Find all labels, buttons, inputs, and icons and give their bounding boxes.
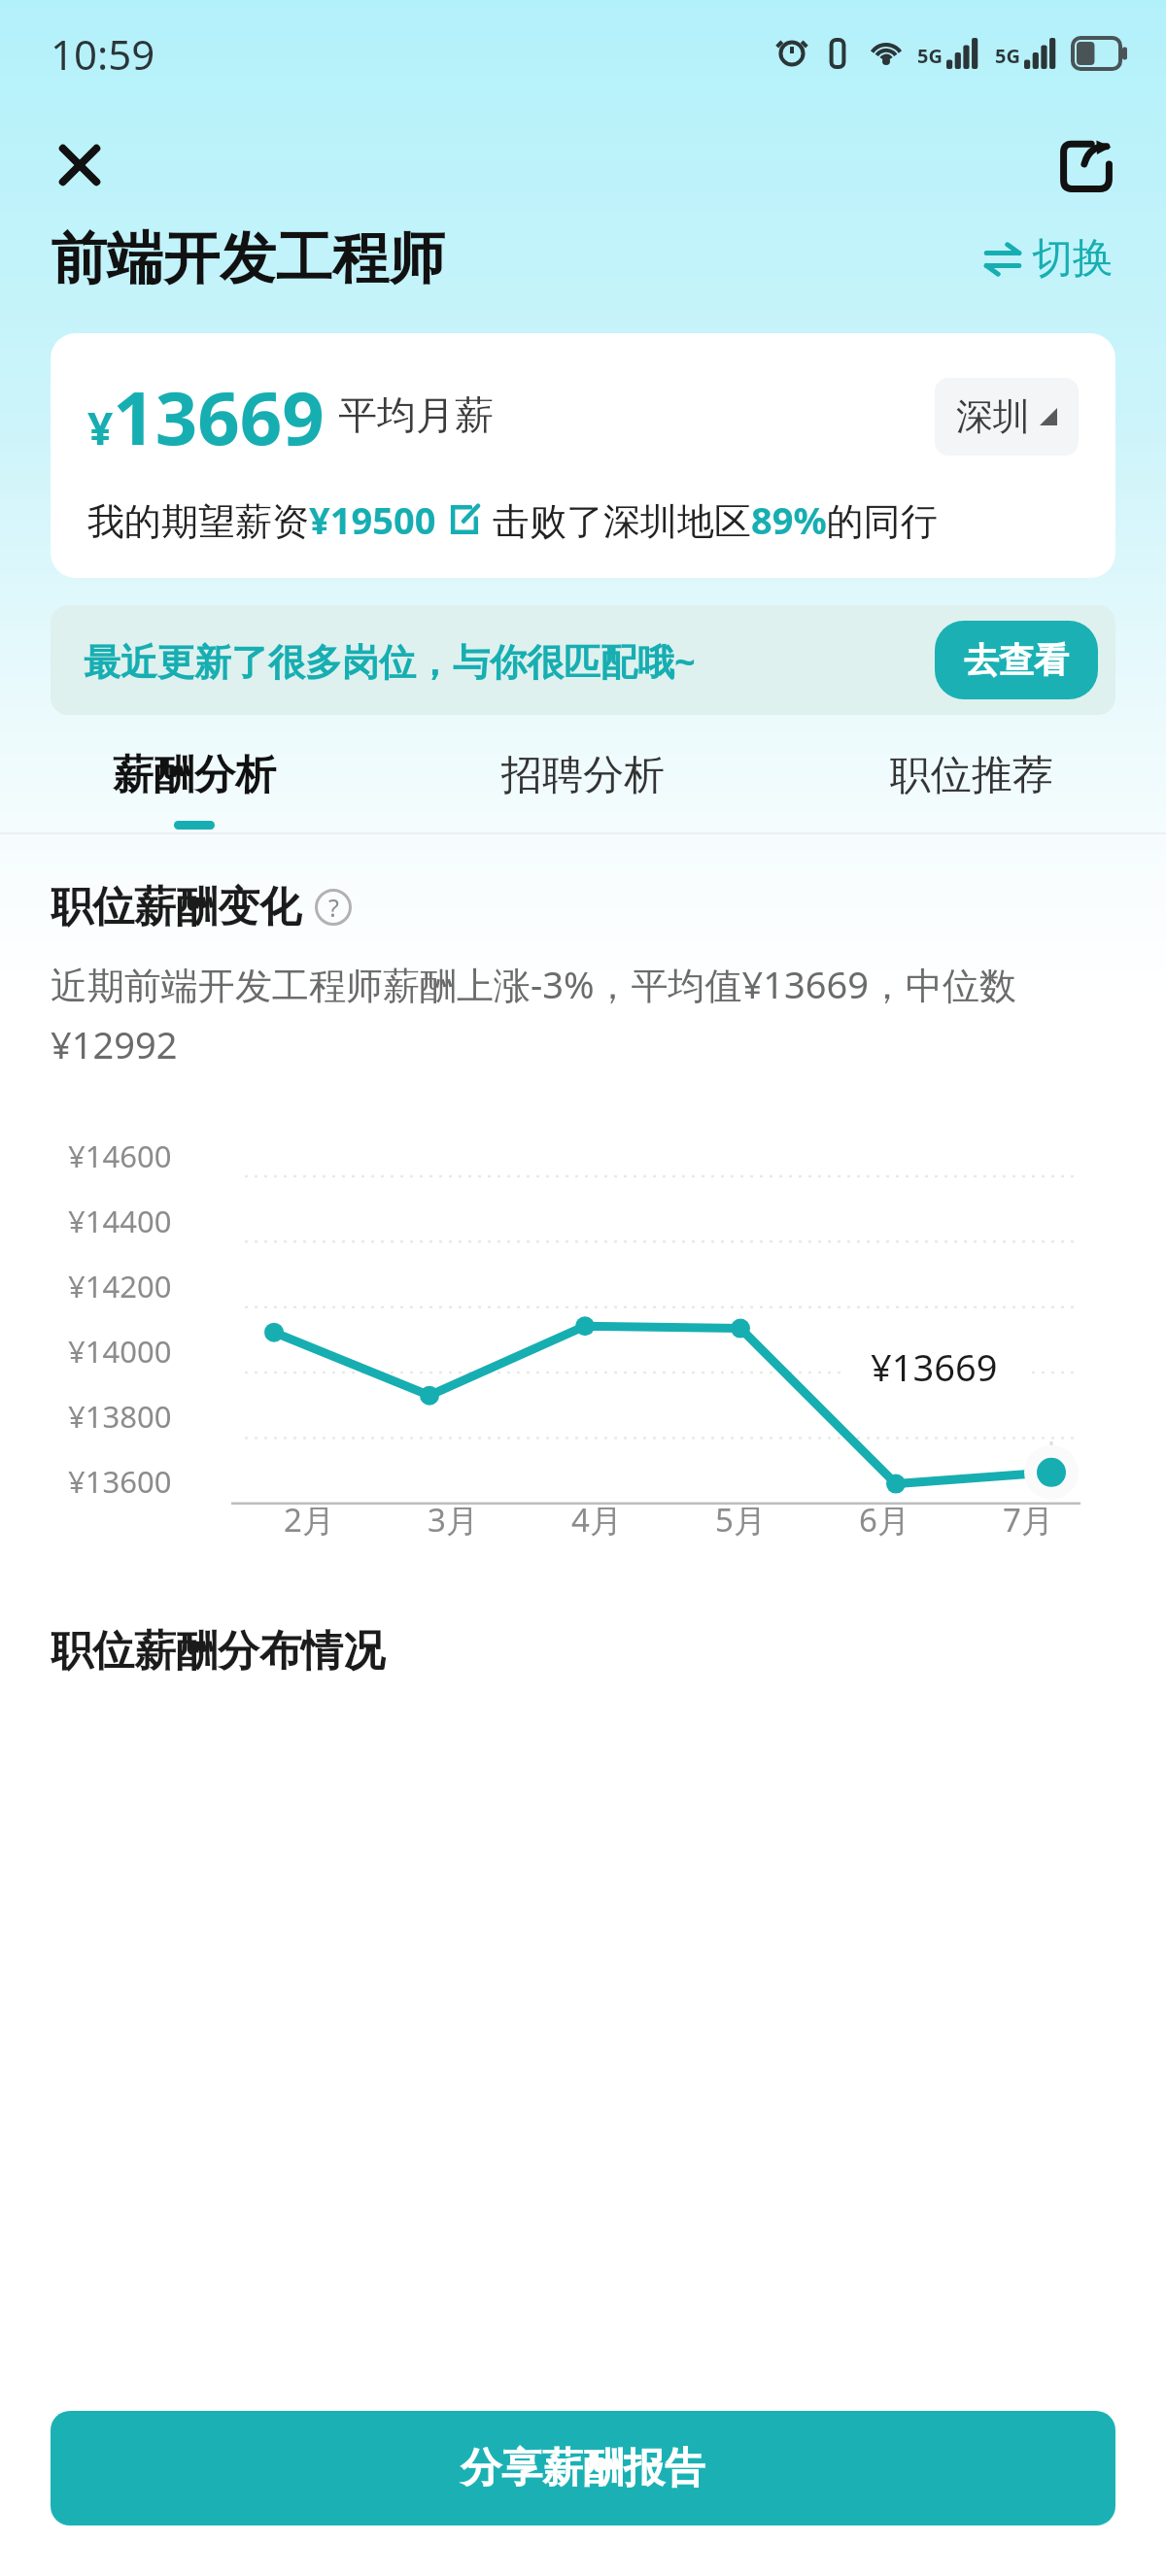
staticText: 2月 <box>284 1498 334 1542</box>
staticText: ¥14400 <box>68 1201 172 1241</box>
staticText: ¥13800 <box>68 1396 172 1437</box>
staticText: 薪酬分析 <box>113 750 276 801</box>
staticText: 职位推荐 <box>890 750 1053 801</box>
staticText: 我的期望薪资¥19500 <box>87 494 436 545</box>
button[interactable]: 薪酬分析 <box>0 750 389 830</box>
staticText: 击败了深圳地区89%的同行 <box>493 494 938 545</box>
button[interactable]: 职位推荐 <box>777 750 1166 830</box>
staticText: 5月 <box>715 1498 766 1542</box>
staticText: 10:59 <box>51 26 155 82</box>
staticText: 6月 <box>859 1498 909 1542</box>
button[interactable]: 招聘分析 <box>389 750 777 830</box>
button[interactable]: 最近更新了很多岗位，与你很匹配哦~ <box>51 605 1115 715</box>
staticText: 职位薪酬变化 <box>51 881 301 933</box>
staticText: 4月 <box>571 1498 622 1542</box>
staticText: 前端开发工程师 <box>51 223 445 294</box>
staticText: 切换 <box>1032 233 1114 285</box>
staticText: 职位薪酬分布情况 <box>51 1625 385 1678</box>
staticText: 深圳 <box>956 393 1030 440</box>
button[interactable]: 深圳 <box>935 378 1079 456</box>
staticText: 分享薪酬报告 <box>461 2443 705 2494</box>
staticText: 平均月薪 <box>338 390 494 439</box>
staticText: ¥13669 <box>871 1341 998 1392</box>
staticText: ¥13600 <box>68 1461 172 1502</box>
button[interactable]: ¥14600 <box>51 1102 1115 1578</box>
staticText: 5G <box>995 43 1020 69</box>
staticText: ¥14200 <box>68 1266 172 1306</box>
staticText: 3月 <box>428 1498 478 1542</box>
staticText: 最近更新了很多岗位，与你很匹配哦~ <box>84 635 696 686</box>
staticText: 5G <box>917 43 943 69</box>
button[interactable]: 切换 <box>976 225 1121 292</box>
button[interactable]: 职位薪酬变化 <box>51 881 352 933</box>
staticText: ? <box>328 891 339 924</box>
button[interactable]: 去查看 <box>935 621 1098 699</box>
button[interactable]: 分享薪酬报告 <box>51 2411 1115 2525</box>
button[interactable]: ¥13669 <box>51 333 1115 578</box>
staticText: ¥13669 <box>87 366 325 467</box>
staticText: 招聘分析 <box>501 750 665 801</box>
staticText: 近期前端开发工程师薪酬上涨-3%，平均值¥13669，中位数¥12992 <box>51 959 1108 1069</box>
staticText: ¥14000 <box>68 1331 172 1372</box>
staticText: ¥14600 <box>68 1135 172 1176</box>
staticText: 去查看 <box>964 638 1069 682</box>
button[interactable]: 分享 <box>1049 128 1123 202</box>
button[interactable]: 关闭 <box>43 128 117 202</box>
staticText: 7月 <box>1003 1498 1053 1542</box>
